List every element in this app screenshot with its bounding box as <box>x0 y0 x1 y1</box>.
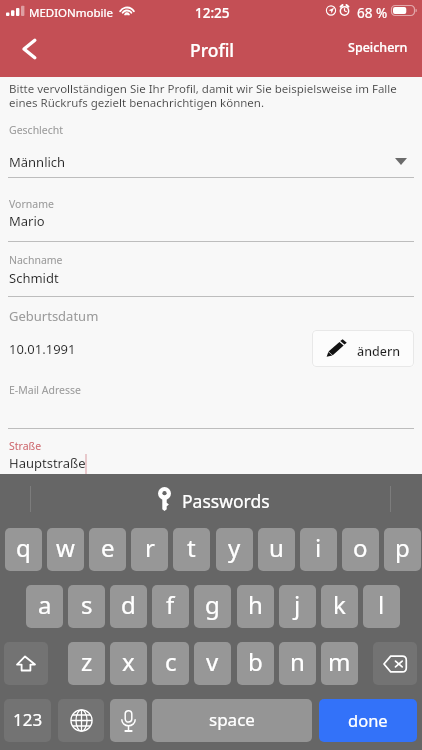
button[interactable]: k <box>321 585 358 628</box>
staticText: done <box>348 709 388 731</box>
button[interactable]: y <box>216 528 253 571</box>
button[interactable]: Löschen <box>373 642 417 685</box>
staticText: Geschlecht <box>9 123 64 137</box>
staticText: c <box>165 645 177 678</box>
button[interactable]: i <box>300 528 337 571</box>
button[interactable]: z <box>68 642 105 685</box>
staticText: t <box>187 531 196 564</box>
staticText: q <box>16 531 31 564</box>
staticText: p <box>395 531 410 564</box>
button[interactable]: d <box>110 585 147 628</box>
staticText: Straße <box>9 439 42 453</box>
staticText: m <box>328 645 351 678</box>
staticText: s <box>81 588 93 621</box>
button[interactable]: q <box>5 528 42 571</box>
button[interactable]: b <box>237 642 274 685</box>
staticText: Passwords <box>182 489 270 513</box>
staticText: l <box>378 588 385 621</box>
button[interactable]: Passwords <box>150 480 280 518</box>
button[interactable]: ändern <box>312 330 414 367</box>
button[interactable]: space <box>152 699 312 742</box>
staticText: ändern <box>357 343 401 360</box>
button[interactable]: j <box>279 585 316 628</box>
staticText: g <box>205 588 220 621</box>
staticText: 68 % <box>357 4 388 22</box>
button[interactable]: e <box>89 528 126 571</box>
staticText: a <box>38 588 52 621</box>
staticText: j <box>294 588 301 621</box>
staticText: h <box>248 588 263 621</box>
button[interactable]: a <box>26 585 63 628</box>
button[interactable]: Vorname <box>0 185 422 240</box>
button[interactable]: w <box>47 528 84 571</box>
button[interactable]: Tastatur wechseln <box>58 699 104 742</box>
staticText: n <box>290 645 305 678</box>
button[interactable]: p <box>384 528 421 571</box>
staticText: o <box>353 531 368 564</box>
staticText: Mario <box>9 212 45 230</box>
staticText: 10.01.1991 <box>9 340 76 358</box>
staticText: Hauptstraße <box>9 454 86 472</box>
staticText: b <box>248 645 263 678</box>
button[interactable]: Speichern <box>338 32 418 62</box>
button[interactable]: Straße <box>0 434 422 474</box>
staticText: 123 <box>13 708 43 731</box>
button[interactable]: t <box>173 528 210 571</box>
staticText: k <box>333 588 346 621</box>
button[interactable]: n <box>279 642 316 685</box>
staticText: z <box>81 645 93 678</box>
button[interactable]: o <box>342 528 379 571</box>
button[interactable]: done <box>319 699 417 742</box>
button[interactable]: Nachname <box>0 245 422 295</box>
button[interactable]: 123 <box>4 699 51 742</box>
staticText: Speichern <box>348 39 408 56</box>
button[interactable]: Umschalt <box>4 642 48 685</box>
button[interactable]: Geschlecht <box>0 118 422 178</box>
staticText: f <box>166 588 175 621</box>
staticText: E-Mail Adresse <box>9 383 81 397</box>
button[interactable]: h <box>237 585 274 628</box>
staticText: Vorname <box>9 197 54 211</box>
staticText: d <box>121 588 136 621</box>
staticText: Nachname <box>9 253 63 267</box>
button[interactable]: E-Mail Adresse <box>0 378 422 426</box>
staticText: MEDIONmobile <box>29 5 114 21</box>
staticText: space <box>209 708 255 731</box>
button[interactable]: u <box>258 528 295 571</box>
staticText: v <box>206 645 219 678</box>
button[interactable]: v <box>194 642 231 685</box>
staticText: Profil <box>190 38 235 62</box>
button[interactable]: m <box>321 642 358 685</box>
button[interactable]: g <box>194 585 231 628</box>
button[interactable]: Zurück <box>6 26 52 72</box>
staticText: Schmidt <box>9 269 59 287</box>
staticText: y <box>228 531 241 564</box>
staticText: Männlich <box>9 153 66 171</box>
staticText: Geburtsdatum <box>9 307 99 325</box>
button[interactable]: c <box>152 642 189 685</box>
staticText: r <box>145 531 155 564</box>
staticText: 12:25 <box>195 4 230 22</box>
button[interactable]: s <box>68 585 105 628</box>
staticText: Bitte vervollständigen Sie Ihr Profil, d… <box>9 81 413 111</box>
button[interactable]: r <box>131 528 168 571</box>
staticText: e <box>101 531 115 564</box>
button[interactable]: f <box>152 585 189 628</box>
staticText: u <box>269 531 284 564</box>
staticText: x <box>122 645 135 678</box>
button[interactable]: x <box>110 642 147 685</box>
button[interactable]: Diktieren <box>110 699 147 742</box>
button[interactable]: l <box>363 585 400 628</box>
staticText: w <box>56 531 75 564</box>
staticText: i <box>315 531 322 564</box>
